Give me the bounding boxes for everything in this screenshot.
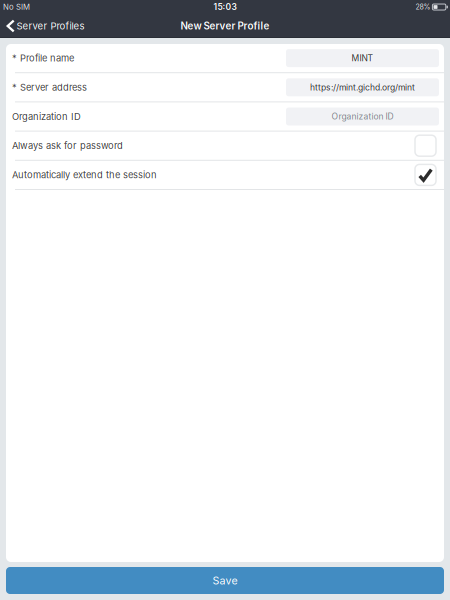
staticText: Server Profiles [16, 20, 84, 32]
staticText: 28% [415, 3, 430, 11]
staticText: Save [212, 574, 237, 587]
staticText: No SIM [3, 2, 30, 12]
button[interactable]: Save [6, 567, 444, 594]
staticText: New Server Profile [180, 20, 269, 32]
staticText: 15:03 [213, 2, 236, 12]
staticText: * Profile name [12, 52, 74, 64]
button[interactable]: Always ask for password [6, 132, 444, 160]
staticText: * Server address [12, 82, 87, 93]
staticText: Always ask for password [12, 140, 123, 151]
button[interactable]: Automatically extend the session [6, 161, 444, 189]
staticText: MINT [351, 53, 373, 63]
button[interactable]: Server Profiles [0, 14, 92, 38]
staticText: https://mint.gichd.org/mint [310, 82, 415, 92]
staticText: Organization ID [12, 111, 81, 122]
staticText: Automatically extend the session [12, 169, 157, 181]
staticText: Organization ID [331, 111, 393, 122]
